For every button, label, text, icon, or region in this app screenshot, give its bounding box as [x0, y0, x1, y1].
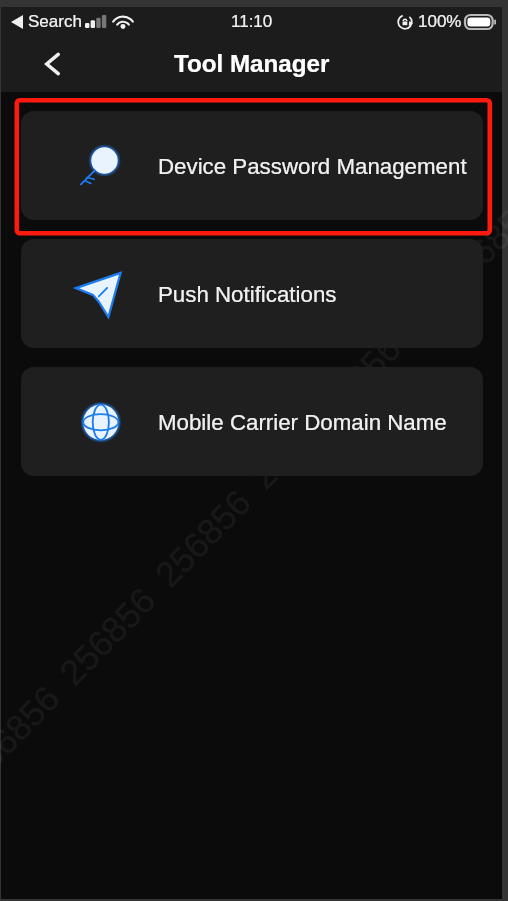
button[interactable]: Push Notifications [21, 239, 483, 348]
staticText: Search [28, 12, 82, 31]
staticText: 11:10 [231, 12, 273, 31]
button[interactable]: Device Password Management [21, 111, 483, 220]
staticText: Tool Manager [174, 50, 330, 77]
staticText: Device Password Management [158, 154, 467, 179]
staticText: Mobile Carrier Domain Name [158, 410, 447, 435]
button[interactable]: Mobile Carrier Domain Name [21, 367, 483, 476]
staticText: Push Notifications [158, 282, 337, 307]
staticText: 100% [418, 12, 462, 31]
button[interactable]: Back [31, 44, 73, 86]
